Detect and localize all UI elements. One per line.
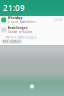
button[interactable]: WhatsApp [0,15,64,25]
staticText: Weitere Mitteilungen [6,36,37,39]
staticText: 2 neue Nachrichten [8,20,36,24]
staticText: 21:05 [54,18,63,22]
staticText: Einstellungen [8,26,28,30]
staticText: 21:09 [3,3,25,13]
button[interactable]: Alle löschen [1,39,22,44]
staticText: WhatsApp [8,16,23,20]
staticText: Alle löschen [3,40,21,43]
button[interactable]: Einstellungen [0,25,64,35]
staticText: Update verfügbar [8,30,32,34]
